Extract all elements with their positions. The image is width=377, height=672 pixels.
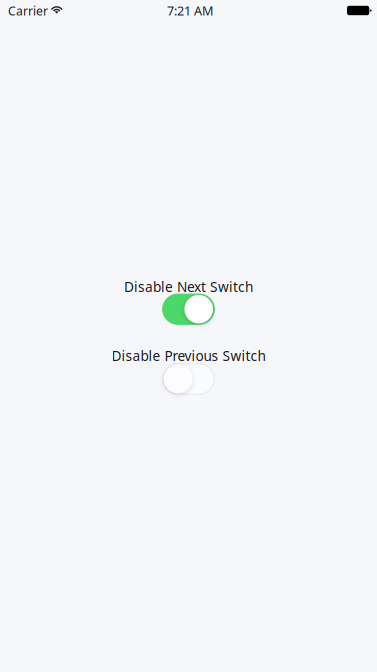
button[interactable]: Disable Next Switch, on [163,294,214,324]
staticText: Carrier [8,2,48,19]
staticText: 7:21 AM [167,2,213,19]
staticText: Disable Next Switch [124,277,253,296]
staticText: Disable Previous Switch [111,346,265,365]
button[interactable]: Disable Previous Switch, off [163,364,214,394]
